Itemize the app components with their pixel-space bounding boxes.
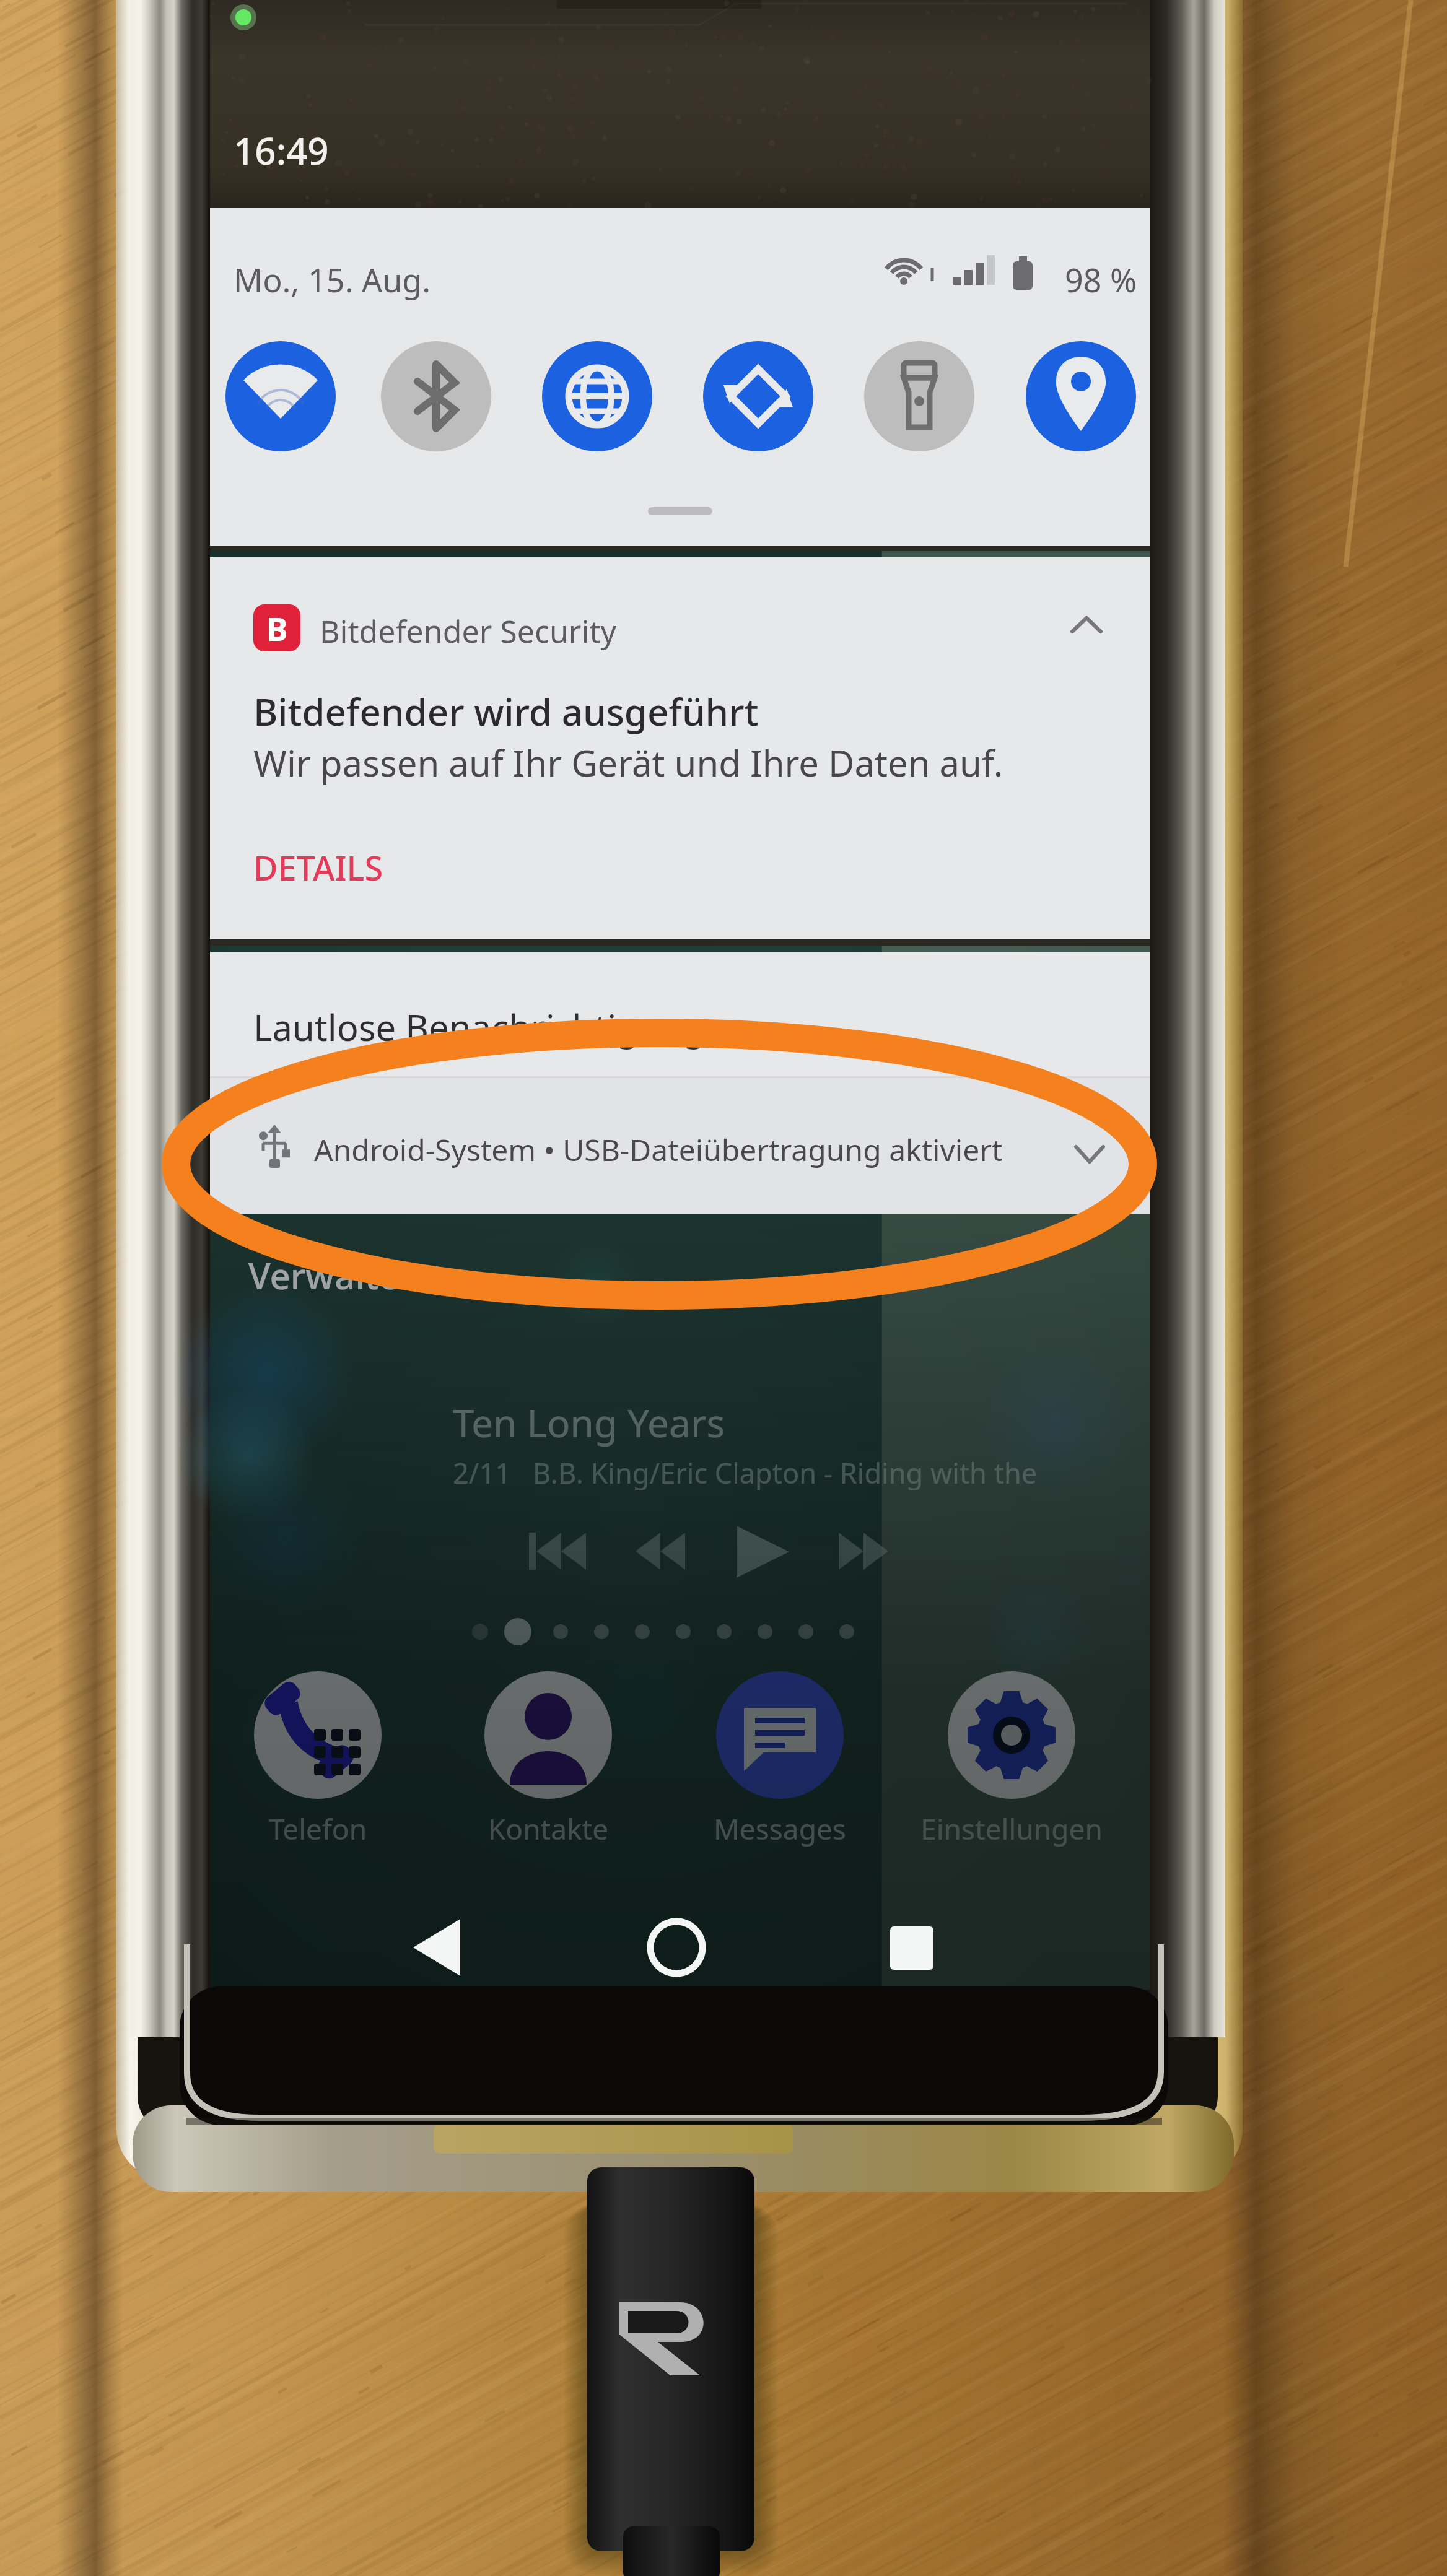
staticText: Verwalten bbox=[248, 1251, 422, 1300]
staticText: Bitdefender wird ausgeführt bbox=[253, 686, 759, 737]
button[interactable]: WLAN bbox=[225, 341, 336, 451]
staticText: B bbox=[266, 606, 288, 650]
button[interactable]: Mobile Daten bbox=[542, 341, 652, 451]
staticText: Lautlose Benachrichtigungen bbox=[253, 1003, 748, 1051]
button[interactable]: Einklappen bbox=[1067, 611, 1107, 650]
button[interactable]: B bbox=[210, 557, 1150, 946]
button[interactable]: Vorspulen bbox=[842, 1511, 929, 1591]
button[interactable]: Zurück bbox=[369, 1889, 505, 2006]
staticText: Einstellungen bbox=[903, 1809, 1120, 1848]
button[interactable]: Startbildschirm bbox=[608, 1889, 745, 2006]
staticText: Android-System • USB-Dateiübertragung ak… bbox=[314, 1129, 1003, 1170]
button[interactable]: Lautlose Benachrichtigungen bbox=[210, 952, 1150, 1076]
staticText: Ten Long Years bbox=[453, 1396, 725, 1448]
button[interactable]: Telefon bbox=[209, 1668, 426, 1873]
staticText: Telefon bbox=[209, 1809, 426, 1848]
button[interactable]: Übersicht bbox=[844, 1889, 980, 2006]
button[interactable]: DETAILS bbox=[253, 845, 383, 890]
staticText: 98 % bbox=[1065, 258, 1137, 302]
button[interactable]: Vorheriger Titel bbox=[523, 1511, 610, 1591]
staticText: Mo., 15. Aug. bbox=[234, 258, 431, 302]
button[interactable]: Ausklappen bbox=[1071, 1136, 1108, 1173]
button[interactable]: Kontakte bbox=[440, 1668, 657, 1873]
button[interactable]: Wiedergabe bbox=[724, 1511, 811, 1591]
button[interactable]: Standort bbox=[1026, 341, 1136, 451]
button[interactable]: Android-System • USB-Dateiübertragung ak… bbox=[210, 1076, 1150, 1214]
staticText: Messages bbox=[671, 1809, 888, 1848]
button[interactable]: Automatisch drehen bbox=[703, 341, 813, 451]
staticText: 16:49 bbox=[234, 125, 329, 176]
staticText: 2/11 B.B. King/Eric Clapton - Riding wit… bbox=[453, 1454, 1038, 1492]
button[interactable]: Bluetooth bbox=[381, 341, 491, 451]
button[interactable]: Taschenlampe bbox=[864, 341, 974, 451]
staticText: DETAILS bbox=[253, 845, 383, 890]
staticText: Wir passen auf Ihr Gerät und Ihre Daten … bbox=[253, 738, 1003, 787]
button[interactable]: Messages bbox=[671, 1668, 888, 1873]
button[interactable]: Einstellungen bbox=[903, 1668, 1120, 1873]
button[interactable]: Zurückspulen bbox=[622, 1511, 709, 1591]
staticText: Kontakte bbox=[440, 1809, 657, 1848]
staticText: Bitdefender Security bbox=[320, 610, 616, 652]
